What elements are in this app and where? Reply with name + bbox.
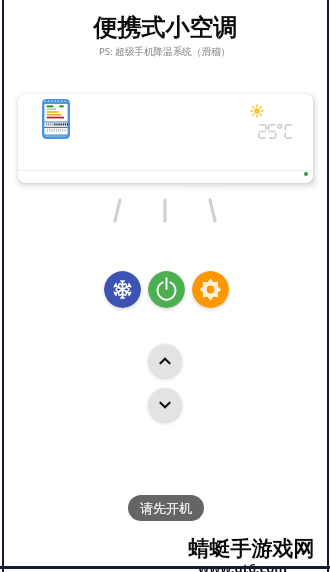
staticText: www.qt6.com: [196, 561, 285, 572]
staticText: 蜻蜓手游戏网: [190, 536, 316, 562]
staticText: 便携式小空调: [93, 13, 237, 43]
staticText: 蜻蜓手游戏网: [188, 534, 314, 560]
staticText: 蜻蜓手游戏网: [187, 534, 313, 560]
staticText: www.qt6.com: [196, 560, 285, 572]
button[interactable]: 请先开机: [128, 495, 204, 521]
staticText: 蜻蜓手游戏网: [187, 537, 313, 563]
button[interactable]: Cool mode: [104, 271, 141, 308]
staticText: PS: 超级手机降温系统（滑稽）: [99, 45, 231, 58]
staticText: 蜻蜓手游戏网: [187, 536, 313, 562]
staticText: 蜻蜓手游戏网: [188, 538, 314, 564]
staticText: www.qt6.com: [200, 557, 289, 572]
staticText: 蜻蜓手游戏网: [190, 538, 316, 564]
staticText: 蜻蜓手游戏网: [189, 536, 315, 562]
staticText: 蜻蜓手游戏网: [189, 537, 315, 563]
staticText: www.qt6.com: [198, 560, 287, 572]
staticText: 蜻蜓手游戏网: [186, 534, 312, 560]
staticText: www.qt6.com: [199, 560, 288, 572]
staticText: www.qt6.com: [198, 557, 287, 572]
staticText: www.qt6.com: [199, 557, 288, 572]
staticText: www.qt6.com: [197, 559, 286, 572]
staticText: www.qt6.com: [198, 558, 287, 572]
button[interactable]: Brightness: [192, 271, 229, 308]
staticText: www.qt6.com: [196, 557, 285, 572]
staticText: 请先开机: [140, 500, 192, 516]
staticText: www.qt6.com: [200, 559, 289, 572]
staticText: www.qt6.com: [200, 558, 289, 572]
staticText: 蜻蜓手游戏网: [188, 537, 314, 563]
staticText: www.qt6.com: [198, 561, 287, 572]
staticText: 蜻蜓手游戏网: [186, 537, 312, 563]
staticText: 蜻蜓手游戏网: [190, 534, 316, 560]
staticText: www.qt6.com: [196, 559, 285, 572]
staticText: 蜻蜓手游戏网: [186, 536, 312, 562]
button[interactable]: Increase temperature: [148, 344, 182, 378]
staticText: 蜻蜓手游戏网: [188, 535, 314, 561]
staticText: 蜻蜓手游戏网: [189, 534, 315, 560]
staticText: www.qt6.com: [200, 561, 289, 572]
staticText: 蜻蜓手游戏网: [186, 538, 312, 564]
staticText: www.qt6.com: [199, 561, 288, 572]
staticText: www.qt6.com: [197, 557, 286, 572]
staticText: 蜻蜓手游戏网: [187, 535, 313, 561]
staticText: www.qt6.com: [200, 560, 289, 572]
button[interactable]: Power: [148, 271, 185, 308]
staticText: 蜻蜓手游戏网: [187, 538, 313, 564]
staticText: www.qt6.com: [197, 558, 286, 572]
staticText: www.qt6.com: [198, 559, 287, 572]
staticText: www.qt6.com: [199, 558, 288, 572]
staticText: www.qt6.com: [199, 559, 288, 572]
staticText: 蜻蜓手游戏网: [186, 535, 312, 561]
staticText: www.qt6.com: [197, 561, 286, 572]
staticText: 蜻蜓手游戏网: [189, 538, 315, 564]
staticText: 蜻蜓手游戏网: [189, 535, 315, 561]
button[interactable]: [18, 94, 313, 183]
staticText: www.qt6.com: [197, 560, 286, 572]
staticText: www.qt6.com: [196, 558, 285, 572]
button[interactable]: Decrease temperature: [148, 388, 182, 422]
staticText: 蜻蜓手游戏网: [188, 536, 314, 562]
staticText: 蜻蜓手游戏网: [190, 537, 316, 563]
staticText: 蜻蜓手游戏网: [190, 535, 316, 561]
